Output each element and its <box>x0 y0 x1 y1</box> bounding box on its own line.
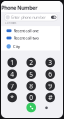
button[interactable]: 9 <box>45 81 55 91</box>
button[interactable]: Delete <box>42 103 51 112</box>
staticText: 0 <box>29 93 33 102</box>
button[interactable]: City <box>1 43 60 50</box>
button[interactable]: 8 <box>26 81 36 91</box>
staticText: 6 <box>48 70 52 79</box>
button[interactable]: 2 <box>26 58 36 67</box>
staticText: 3 <box>48 58 52 67</box>
staticText: 9 <box>48 82 52 90</box>
button[interactable]: 6 <box>45 69 55 79</box>
staticText: Enter phone number <box>11 15 46 20</box>
staticText: 8 <box>29 82 33 90</box>
staticText: # <box>48 93 52 102</box>
staticText: City <box>13 44 20 49</box>
staticText: 4 <box>10 70 14 79</box>
staticText: Phone Number <box>1 4 37 11</box>
button[interactable]: 0 <box>26 93 36 102</box>
staticText: 1 <box>10 58 14 67</box>
button[interactable]: 1 <box>7 58 17 67</box>
button[interactable]: 3 <box>45 58 55 67</box>
button[interactable]: Call <box>26 103 36 112</box>
button[interactable]: Recent call two <box>1 34 60 42</box>
button[interactable]: 5 <box>26 69 36 79</box>
button[interactable]: Phone Number <box>0 4 38 11</box>
button[interactable]: Recent call one <box>1 27 60 34</box>
staticText: 7 <box>10 82 14 90</box>
staticText: 5 <box>29 70 33 79</box>
button[interactable]: # <box>45 93 55 102</box>
button[interactable]: 4 <box>7 69 17 79</box>
button[interactable]: * <box>7 93 17 102</box>
button[interactable]: 7 <box>7 81 17 91</box>
staticText: Contacts <box>5 21 16 25</box>
staticText: Recent call two <box>13 35 38 41</box>
staticText: Recent call one <box>13 28 38 33</box>
staticText: * <box>10 93 14 102</box>
staticText: 2 <box>29 58 33 67</box>
